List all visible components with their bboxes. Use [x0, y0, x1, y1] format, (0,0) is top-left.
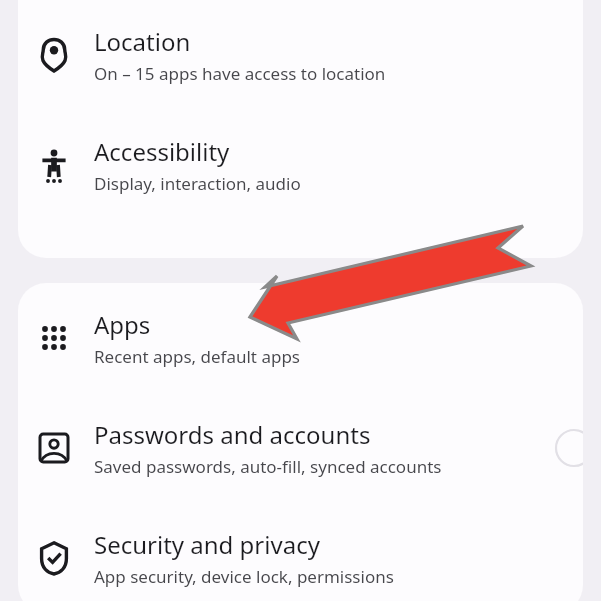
button[interactable]: Location: [18, 0, 583, 110]
staticText: Recent apps, default apps: [94, 345, 301, 368]
staticText: Apps: [94, 308, 151, 341]
staticText: App security, device lock, permissions: [94, 565, 394, 588]
button[interactable]: Security and privacy: [18, 503, 583, 601]
staticText: Passwords and accounts: [94, 418, 371, 451]
staticText: Display, interaction, audio: [94, 172, 301, 195]
staticText: Security and privacy: [94, 528, 320, 561]
button[interactable]: Apps: [18, 283, 583, 393]
staticText: On – 15 apps have access to location: [94, 62, 386, 85]
staticText: Accessibility: [94, 135, 230, 168]
staticText: Saved passwords, auto-fill, synced accou…: [94, 455, 442, 478]
button[interactable]: Passwords and accounts: [18, 393, 583, 503]
button[interactable]: Accessibility: [18, 110, 583, 220]
staticText: Location: [94, 25, 191, 58]
